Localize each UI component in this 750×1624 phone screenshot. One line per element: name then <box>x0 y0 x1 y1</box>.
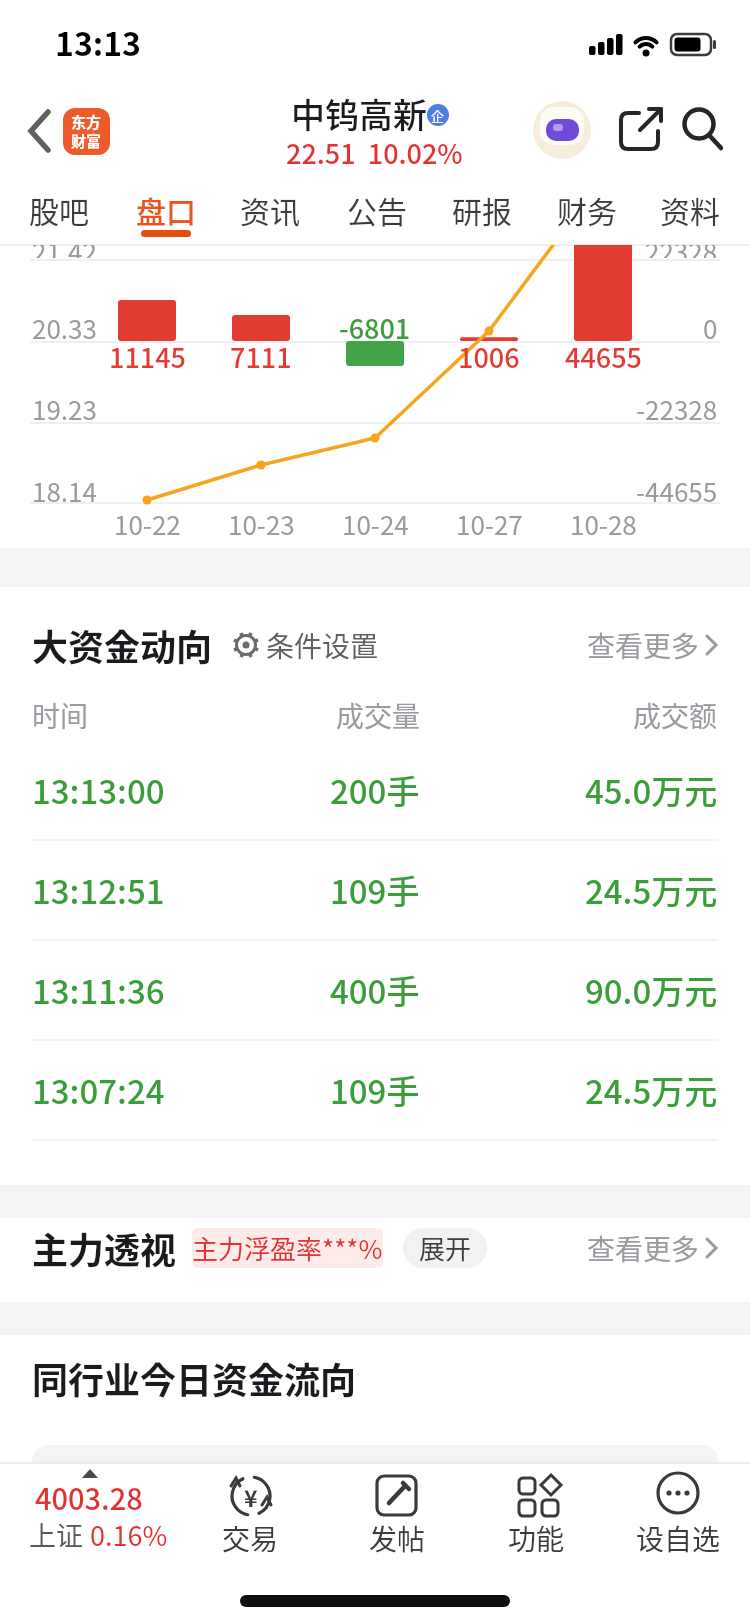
staticText: 24.5万元 <box>585 866 718 914</box>
staticText: 查看更多 <box>587 1228 700 1269</box>
staticText: -44655 <box>636 472 718 510</box>
staticText: 公告 <box>347 188 407 231</box>
staticText: 90.0万元 <box>585 966 718 1014</box>
staticText: 13:12:51 <box>32 866 165 914</box>
staticText: 400手 <box>330 966 420 1014</box>
button[interactable]: 研报 <box>437 183 527 235</box>
button[interactable]: 展开 <box>403 1228 487 1268</box>
staticText: 大资金动向 <box>32 619 213 671</box>
staticText: 0.16% <box>90 1515 168 1554</box>
staticText: 13:07:24 <box>32 1066 165 1114</box>
staticText: 股吧 <box>29 188 89 231</box>
staticText: 4003.28 <box>35 1476 143 1518</box>
staticText: ¥ <box>244 1480 258 1513</box>
button[interactable] <box>18 100 62 162</box>
staticText: 21.42 <box>32 245 97 258</box>
staticText: 109手 <box>330 866 420 914</box>
button[interactable]: 东方 财富 <box>63 108 110 155</box>
staticText: 22328 <box>645 245 718 258</box>
staticText: 1006 <box>458 337 520 376</box>
staticText: 13:11:36 <box>32 966 165 1014</box>
button[interactable]: 资讯 <box>225 183 315 235</box>
staticText: 功能 <box>508 1518 565 1559</box>
staticText: 200手 <box>330 766 420 814</box>
button[interactable] <box>0 740 750 840</box>
staticText: 18.14 <box>32 472 97 510</box>
staticText: 财务 <box>557 188 617 231</box>
button[interactable] <box>533 101 591 159</box>
button[interactable]: 财务 <box>542 183 632 235</box>
staticText: 资料 <box>660 188 720 231</box>
staticText: -22328 <box>636 390 718 428</box>
button[interactable] <box>560 620 720 670</box>
button[interactable] <box>0 1464 180 1560</box>
staticText: 10-28 <box>570 505 637 543</box>
staticText: 主力透视 <box>32 1222 177 1274</box>
staticText: 东方 财富 <box>71 111 102 152</box>
staticText: 10-22 <box>114 505 181 543</box>
staticText: 11145 <box>109 337 186 376</box>
staticText: 设自选 <box>636 1518 721 1559</box>
staticText: 交易 <box>222 1518 279 1559</box>
button[interactable]: 股吧 <box>14 183 104 235</box>
button[interactable] <box>0 1040 750 1140</box>
button[interactable]: 主力浮盈率***% <box>192 1228 383 1268</box>
button[interactable] <box>620 108 662 150</box>
button[interactable]: 盘口 <box>121 183 211 235</box>
staticText: 109手 <box>330 1066 420 1114</box>
staticText: 20.33 <box>32 309 97 347</box>
staticText: 中钨高新 <box>291 89 427 138</box>
staticText: 44655 <box>565 337 642 376</box>
button[interactable] <box>195 1466 305 1558</box>
staticText: 资讯 <box>240 188 300 231</box>
staticText: 发帖 <box>369 1518 426 1559</box>
staticText: 10-23 <box>228 505 295 543</box>
button[interactable] <box>0 940 750 1040</box>
staticText: 13:13 <box>55 19 141 65</box>
button[interactable] <box>560 1223 720 1273</box>
button[interactable]: 资料 <box>645 183 735 235</box>
staticText: 成交量 <box>336 695 421 736</box>
staticText: 0 <box>703 309 718 347</box>
button[interactable] <box>342 1466 452 1558</box>
staticText: 企 <box>431 106 445 125</box>
staticText: 时间 <box>32 695 89 736</box>
staticText: 研报 <box>452 188 512 231</box>
staticText: 展开 <box>419 1229 472 1267</box>
staticText: 同行业今日资金流向 <box>32 1352 357 1404</box>
staticText: 19.23 <box>32 390 97 428</box>
button[interactable] <box>623 1466 733 1558</box>
staticText: 24.5万元 <box>585 1066 718 1114</box>
staticText: -6801 <box>339 308 411 347</box>
staticText: 成交额 <box>633 695 718 736</box>
staticText: 查看更多 <box>587 625 700 666</box>
staticText: 盘口 <box>136 188 196 231</box>
button[interactable] <box>682 106 726 150</box>
button[interactable] <box>481 1466 591 1558</box>
staticText: 10-27 <box>456 505 523 543</box>
button[interactable] <box>230 620 400 670</box>
staticText: 22.51 10.02% <box>286 133 463 172</box>
staticText: 13:13:00 <box>32 766 165 814</box>
button[interactable] <box>0 840 750 940</box>
staticText: 10-24 <box>342 505 409 543</box>
staticText: 上证 <box>29 1515 90 1554</box>
staticText: 条件设置 <box>266 625 379 666</box>
staticText: 主力浮盈率***% <box>192 1229 383 1267</box>
staticText: 45.0万元 <box>585 766 718 814</box>
staticText: 7111 <box>230 337 292 376</box>
button[interactable]: 公告 <box>332 183 422 235</box>
